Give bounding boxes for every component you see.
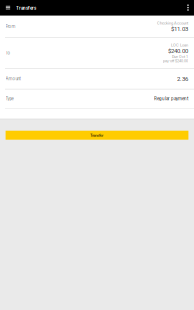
button[interactable]: To xyxy=(0,38,194,68)
staticText: Due Oct 1 xyxy=(172,54,188,59)
staticText: Checking Account xyxy=(157,21,188,25)
staticText: Amount xyxy=(5,76,20,81)
staticText: pay-off $240.00 xyxy=(163,59,188,63)
staticText: To xyxy=(5,50,10,56)
button[interactable]: More options xyxy=(182,0,194,15)
button[interactable]: Transfer xyxy=(6,131,188,140)
staticText: $240.00 xyxy=(168,47,188,54)
button[interactable]: Type xyxy=(0,89,194,108)
button[interactable]: Open navigation menu xyxy=(0,0,16,15)
staticText: LOC Loan xyxy=(171,43,188,47)
staticText: 2.36 xyxy=(177,75,188,82)
staticText: $11.03 xyxy=(171,25,188,32)
button[interactable]: From xyxy=(0,16,194,37)
button[interactable]: Amount xyxy=(0,69,194,89)
staticText: Transfer xyxy=(90,133,104,138)
staticText: Regular payment xyxy=(154,96,188,101)
staticText: Type xyxy=(5,96,13,101)
staticText: From xyxy=(5,24,15,29)
staticText: Transfers xyxy=(16,6,36,11)
